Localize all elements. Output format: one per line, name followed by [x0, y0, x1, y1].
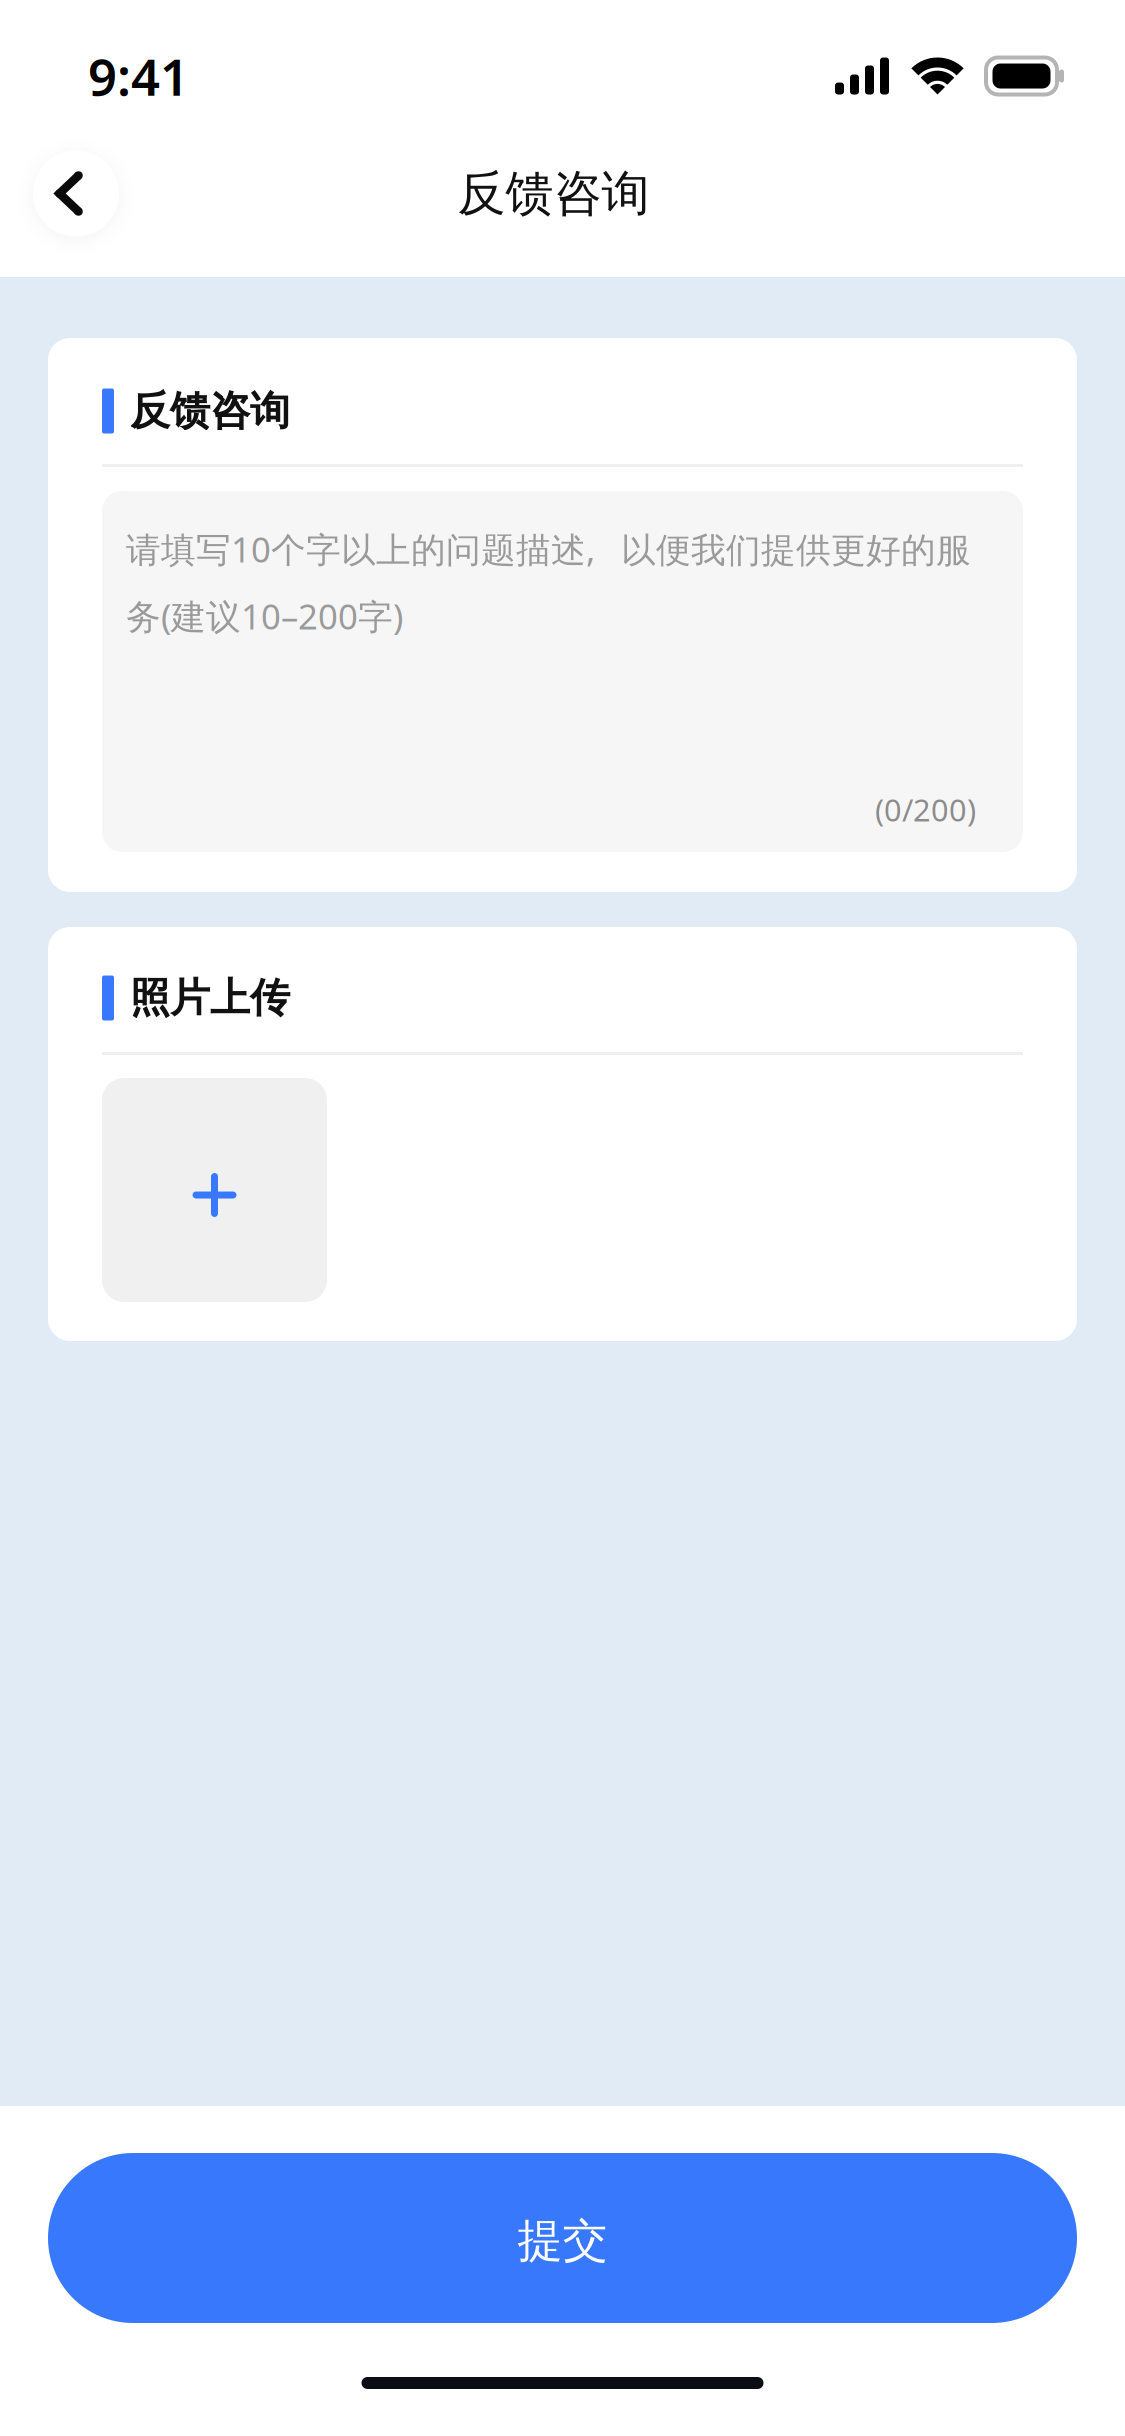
staticText: 反馈咨询: [457, 164, 649, 223]
button[interactable]: 返回: [22, 139, 130, 247]
staticText: (0/200): [875, 789, 976, 830]
staticText: 请填写10个字以上的问题描述, 以便我们提供更好的服务(建议10–200字): [126, 526, 971, 639]
button[interactable]: 提交: [48, 2153, 1077, 2323]
staticText: 照片上传: [130, 973, 290, 1022]
button[interactable]: 添加照片: [102, 1078, 327, 1302]
staticText: 反馈咨询: [130, 386, 290, 435]
staticText: 9:41: [88, 42, 189, 110]
staticText: 提交: [517, 2213, 607, 2269]
